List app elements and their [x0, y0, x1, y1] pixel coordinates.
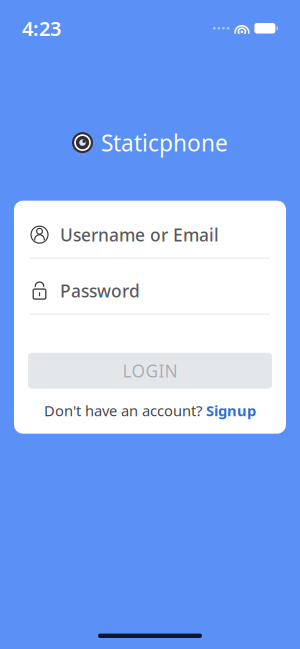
button[interactable]: Don't have an account? — [28, 402, 272, 420]
staticText: Signup — [206, 401, 256, 420]
staticText: 4:23 — [22, 15, 61, 42]
staticText: LOGIN — [122, 359, 177, 382]
button[interactable]: LOGIN — [28, 353, 272, 389]
staticText: Don't have an account? — [44, 401, 202, 420]
staticText: Username or Email — [60, 223, 219, 246]
staticText: Password — [60, 279, 140, 302]
staticText: Staticphone — [101, 128, 228, 158]
